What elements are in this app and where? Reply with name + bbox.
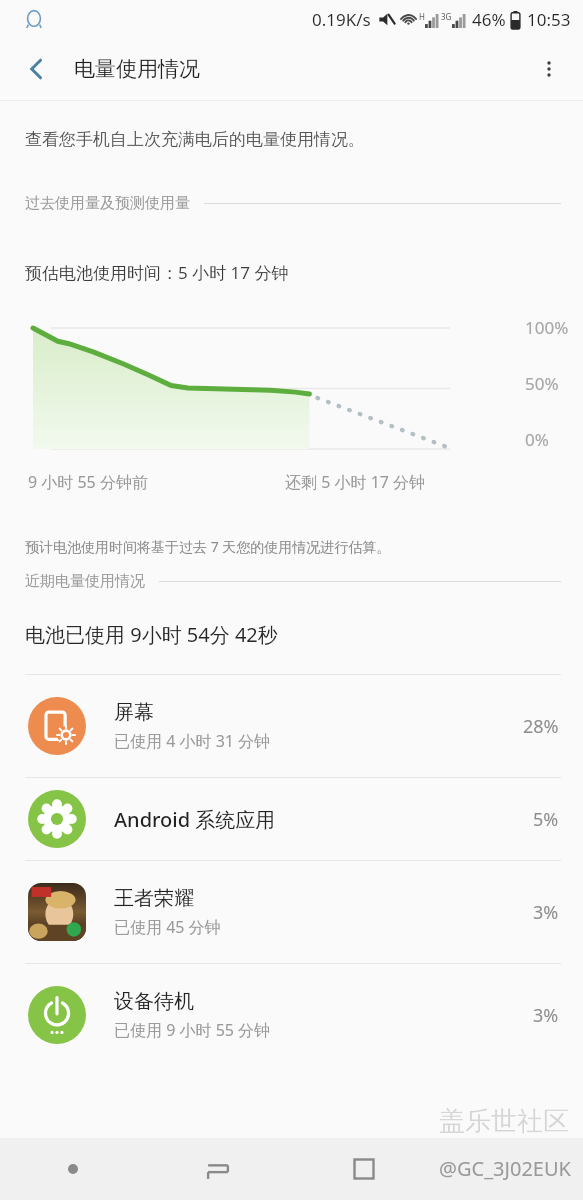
staticText: 电池已使用 9小时 54分 42秒 bbox=[25, 621, 278, 648]
button[interactable]: Back bbox=[145, 1138, 291, 1200]
staticText: 已使用 9 小时 55 分钟 bbox=[114, 1019, 271, 1041]
staticText: 3% bbox=[533, 900, 559, 925]
button[interactable]: Home bbox=[291, 1138, 437, 1200]
staticText: 0.19K/s bbox=[312, 8, 371, 31]
staticText: 9 小时 55 分钟前 bbox=[28, 471, 148, 493]
staticText: 10:53 bbox=[527, 8, 571, 31]
button[interactable]: Android 系统应用 bbox=[0, 778, 583, 860]
staticText: 过去使用量及预测使用量 bbox=[25, 194, 190, 213]
staticText: 3G bbox=[441, 11, 452, 22]
staticText: 近期电量使用情况 bbox=[25, 572, 145, 591]
staticText: Android 系统应用 bbox=[114, 806, 276, 833]
button[interactable]: 屏幕 bbox=[0, 675, 583, 777]
staticText: 还剩 5 小时 17 分钟 bbox=[285, 471, 426, 493]
staticText: 28% bbox=[523, 714, 559, 739]
button[interactable]: 设备待机 bbox=[0, 964, 583, 1066]
staticText: 王者荣耀 bbox=[114, 886, 194, 911]
button[interactable]: More options bbox=[525, 45, 573, 93]
button[interactable]: Recent apps bbox=[0, 1138, 145, 1200]
staticText: 设备待机 bbox=[114, 989, 194, 1014]
staticText: 盖乐世社区 bbox=[439, 1105, 569, 1138]
staticText: 屏幕 bbox=[114, 700, 154, 725]
staticText: 3% bbox=[533, 1003, 559, 1028]
staticText: 0% bbox=[525, 428, 549, 451]
staticText: 电量使用情况 bbox=[74, 56, 200, 82]
staticText: 5% bbox=[533, 807, 559, 832]
staticText: 预计电池使用时间将基于过去 7 天您的使用情况进行估算。 bbox=[25, 537, 391, 556]
staticText: 已使用 45 分钟 bbox=[114, 916, 221, 938]
staticText: @GC_3J02EUK bbox=[439, 1155, 571, 1182]
staticText: 预估电池使用时间：5 小时 17 分钟 bbox=[25, 261, 289, 284]
button[interactable]: Back bbox=[14, 46, 60, 92]
staticText: 46% bbox=[472, 8, 506, 31]
staticText: 50% bbox=[525, 372, 559, 395]
staticText: 查看您手机自上次充满电后的电量使用情况。 bbox=[25, 129, 365, 150]
button[interactable]: 王者荣耀 bbox=[0, 861, 583, 963]
staticText: 已使用 4 小时 31 分钟 bbox=[114, 730, 271, 752]
staticText: H bbox=[419, 11, 425, 22]
staticText: 100% bbox=[525, 316, 569, 339]
